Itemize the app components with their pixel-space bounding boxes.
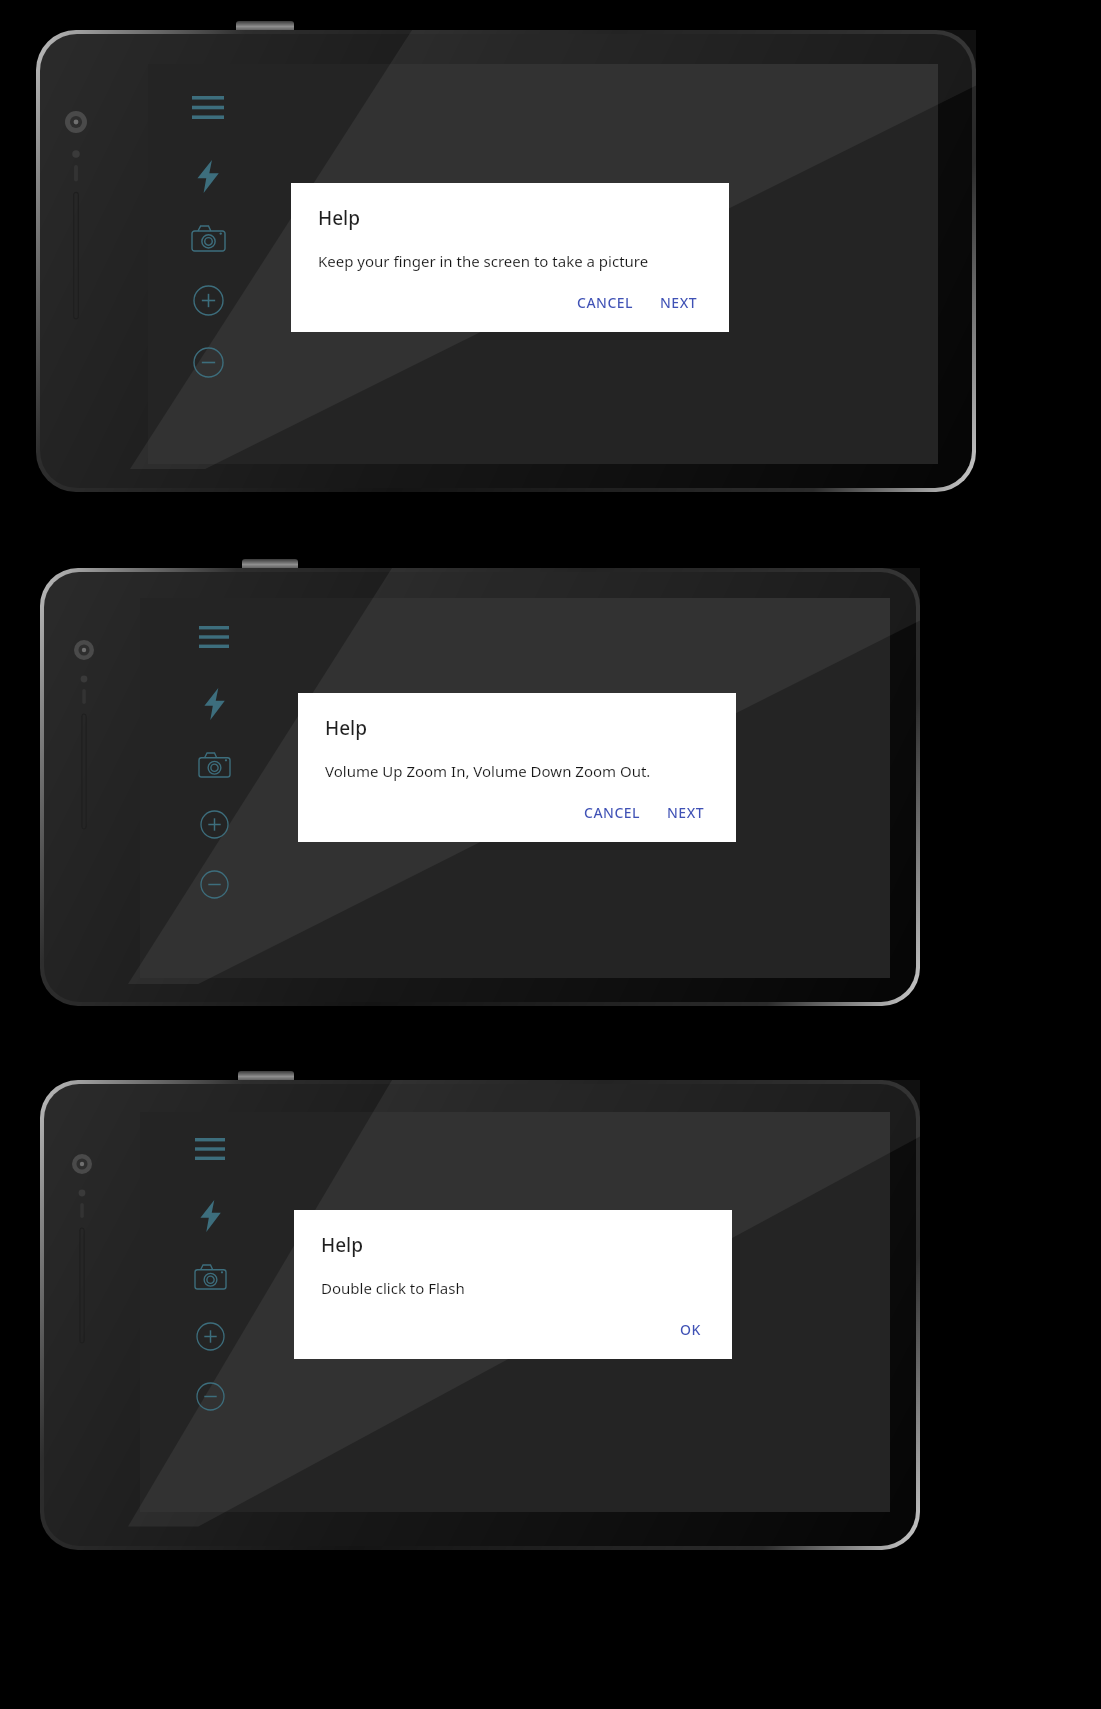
button[interactable]: CANCEL [575,797,650,828]
staticText: Help [318,205,361,231]
staticText: Help [325,715,368,741]
button[interactable]: Zoom out [193,863,235,905]
staticText: NEXT [660,293,698,312]
button[interactable]: Zoom in [186,278,230,322]
button[interactable]: CANCEL [568,287,643,318]
staticText: CANCEL [577,293,634,312]
button[interactable]: Flash [186,154,230,198]
staticText: NEXT [667,803,705,822]
button[interactable]: Switch camera [189,1255,231,1297]
button[interactable]: NEXT [651,287,707,318]
button[interactable]: Flash [189,1195,231,1237]
button[interactable]: OK [671,1314,710,1345]
staticText: Help [321,1232,364,1258]
staticText: Keep your finger in the screen to take a… [318,251,649,271]
staticText: OK [680,1320,701,1339]
button[interactable]: Menu [186,85,230,129]
button[interactable]: Zoom out [189,1375,231,1417]
button[interactable]: Switch camera [193,743,235,785]
button[interactable]: Menu [193,616,235,658]
button[interactable]: NEXT [658,797,714,828]
staticText: Double click to Flash [321,1278,465,1298]
button[interactable]: Menu [189,1128,231,1170]
staticText: CANCEL [584,803,641,822]
button[interactable]: Zoom in [193,803,235,845]
button[interactable]: Flash [193,683,235,725]
staticText: Volume Up Zoom In, Volume Down Zoom Out. [325,761,651,781]
button[interactable]: Zoom out [186,340,230,384]
button[interactable]: Switch camera [186,216,230,260]
button[interactable]: Zoom in [189,1315,231,1357]
